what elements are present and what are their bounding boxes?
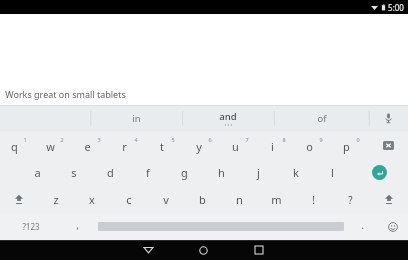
staticText: x	[89, 192, 95, 207]
button[interactable]: ?123	[0, 213, 62, 240]
staticText: w	[46, 139, 55, 154]
button[interactable]: v	[147, 186, 184, 213]
button[interactable]: r	[110, 131, 147, 159]
staticText: y	[196, 139, 202, 154]
button[interactable]: p	[332, 131, 369, 159]
button[interactable]: ?	[332, 186, 369, 213]
button[interactable]: a	[19, 159, 55, 186]
staticText: 5:00	[388, 2, 404, 13]
staticText: b	[199, 192, 206, 207]
staticText: 6	[208, 136, 212, 143]
staticText: p	[343, 139, 350, 154]
staticText: 3	[97, 136, 101, 143]
button[interactable]: o	[295, 131, 332, 159]
staticText: f	[146, 165, 150, 180]
button[interactable]: n	[221, 186, 258, 213]
staticText: c	[126, 192, 132, 207]
staticText: l	[331, 165, 334, 180]
button[interactable]: u	[221, 131, 258, 159]
staticText: ?	[348, 193, 353, 207]
button[interactable]: and	[182, 105, 274, 131]
staticText: and	[219, 110, 237, 123]
staticText: q	[11, 139, 18, 154]
button[interactable]: Shift	[0, 186, 38, 213]
staticText: a	[34, 165, 41, 180]
staticText: in	[132, 112, 141, 125]
staticText: g	[181, 165, 188, 180]
staticText: n	[236, 192, 243, 207]
button[interactable]: ,	[62, 213, 93, 240]
staticText: 9	[319, 136, 323, 143]
button[interactable]: of	[274, 105, 369, 131]
staticText: 5	[171, 136, 175, 143]
staticText: m	[271, 192, 282, 207]
button[interactable]: Home	[176, 240, 231, 260]
staticText: h	[218, 165, 225, 180]
staticText: 1	[23, 136, 27, 143]
button[interactable]: Space	[93, 213, 348, 240]
staticText: v	[163, 192, 169, 207]
button[interactable]: Backspace	[369, 131, 408, 159]
button[interactable]: in	[90, 105, 182, 131]
button[interactable]: b	[184, 186, 221, 213]
staticText: i	[271, 139, 274, 154]
button[interactable]: m	[258, 186, 295, 213]
staticText: u	[232, 139, 239, 154]
staticText: e	[84, 139, 91, 154]
button[interactable]: c	[110, 186, 147, 213]
staticText: z	[53, 192, 59, 207]
staticText: 4	[134, 136, 138, 143]
button[interactable]: w	[36, 131, 73, 159]
staticText: r	[122, 139, 127, 154]
button[interactable]: g	[166, 159, 203, 186]
button[interactable]: i	[258, 131, 295, 159]
button[interactable]: Recent apps	[231, 240, 286, 260]
button[interactable]: Enter	[351, 159, 408, 186]
button[interactable]: e	[73, 131, 110, 159]
button[interactable]: j	[240, 159, 277, 186]
button[interactable]: f	[129, 159, 166, 186]
staticText: 0	[356, 136, 360, 143]
button[interactable]: l	[314, 159, 351, 186]
staticText: of	[317, 112, 327, 125]
staticText: !	[312, 193, 315, 207]
staticText: o	[306, 139, 313, 154]
button[interactable]: !	[295, 186, 332, 213]
button[interactable]: Voice input	[369, 105, 408, 131]
staticText: .	[361, 218, 364, 232]
button[interactable]: h	[203, 159, 240, 186]
button[interactable]: d	[92, 159, 129, 186]
staticText: ,	[76, 218, 79, 232]
staticText: 2	[60, 136, 64, 143]
staticText: s	[71, 165, 77, 180]
button[interactable]: z	[38, 186, 74, 213]
button[interactable]: q	[0, 131, 36, 159]
staticText: t	[160, 139, 164, 154]
staticText: d	[107, 165, 114, 180]
staticText: Works great on small tablets	[5, 88, 126, 100]
button[interactable]: y	[184, 131, 221, 159]
button[interactable]: x	[74, 186, 110, 213]
staticText: 7	[245, 136, 249, 143]
button[interactable]: t	[147, 131, 184, 159]
button[interactable]: k	[277, 159, 314, 186]
staticText: ?123	[22, 221, 40, 232]
staticText: j	[257, 165, 260, 180]
button[interactable]: s	[55, 159, 92, 186]
button[interactable]: Emoji	[377, 213, 408, 240]
button[interactable]: Shift	[369, 186, 408, 213]
staticText: k	[293, 165, 299, 180]
button[interactable]: Back	[121, 240, 176, 260]
staticText: 8	[282, 136, 286, 143]
button[interactable]: .	[348, 213, 377, 240]
